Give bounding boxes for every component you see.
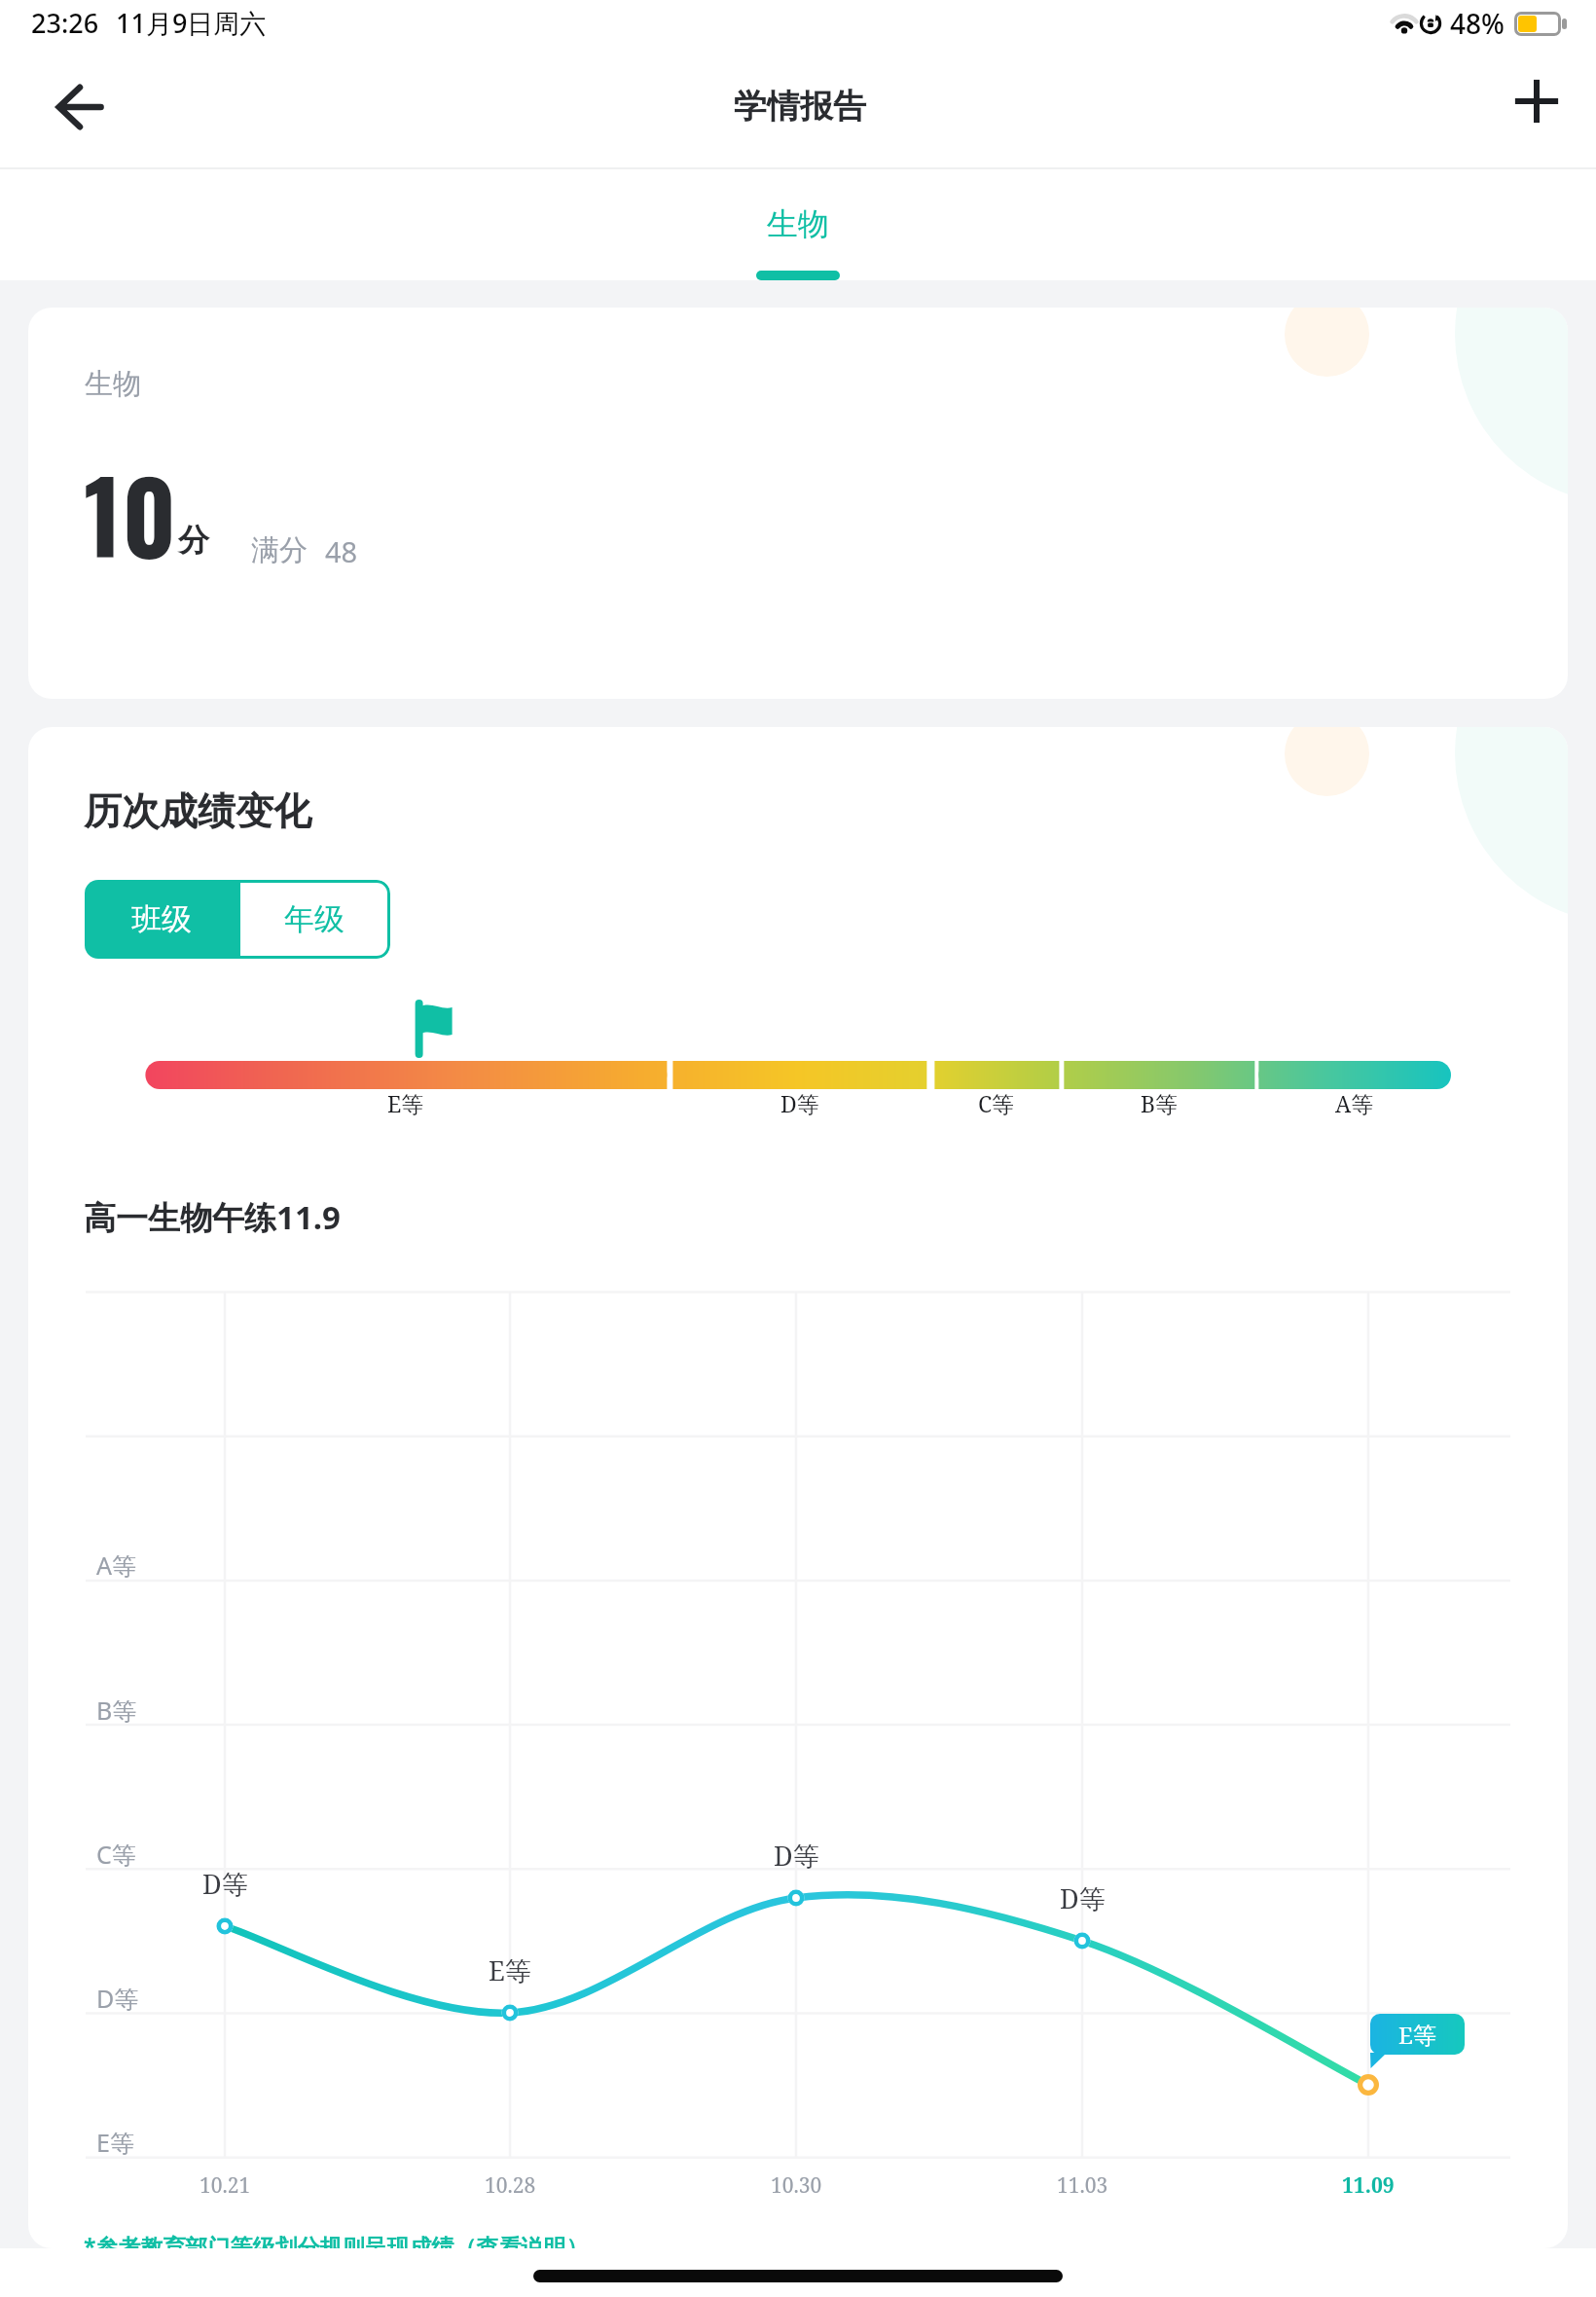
staticText: D等 xyxy=(774,1838,819,1874)
staticText: 48 xyxy=(325,532,358,570)
button[interactable]: 年级 xyxy=(237,880,390,959)
staticText: B等 xyxy=(96,1694,137,1727)
staticText: 学情报告 xyxy=(734,86,866,128)
staticText: 48% xyxy=(1450,5,1505,42)
button[interactable]: 班级 xyxy=(85,880,237,959)
staticText: A等 xyxy=(1335,1088,1374,1118)
staticText: E等 xyxy=(1398,2019,1436,2051)
staticText: 11月9日周六 xyxy=(116,5,267,41)
button[interactable]: 生物 xyxy=(756,169,840,280)
staticText: 11.09 xyxy=(1342,2171,1395,2200)
staticText: C等 xyxy=(96,1838,136,1871)
staticText: 23:26 xyxy=(31,5,99,41)
staticText: C等 xyxy=(978,1088,1015,1118)
staticText: 10 xyxy=(84,439,177,586)
staticText: E等 xyxy=(96,2126,134,2159)
staticText: A等 xyxy=(96,1549,136,1582)
staticText: 高一生物午练11.9 xyxy=(84,1195,341,1239)
staticText: 生物 xyxy=(767,204,829,243)
staticText: 10.21 xyxy=(199,2171,251,2200)
staticText: 生物 xyxy=(85,366,141,402)
staticText: D等 xyxy=(780,1088,819,1118)
staticText: D等 xyxy=(96,1982,139,2015)
staticText: *参考教育部门等级划分规则呈现成绩（查看说明） xyxy=(84,2231,589,2248)
button[interactable]: Back xyxy=(54,81,106,133)
staticText: E等 xyxy=(387,1088,424,1118)
staticText: 10.30 xyxy=(771,2171,822,2200)
staticText: D等 xyxy=(202,1866,248,1902)
staticText: 年级 xyxy=(284,900,345,938)
staticText: B等 xyxy=(1141,1088,1179,1118)
staticText: 班级 xyxy=(131,900,192,938)
button[interactable]: Add xyxy=(1505,69,1569,133)
staticText: 历次成绩变化 xyxy=(84,787,311,835)
staticText: D等 xyxy=(1060,1880,1106,1916)
staticText: E等 xyxy=(489,1952,531,1988)
staticText: 分 xyxy=(178,521,209,560)
staticText: 11.03 xyxy=(1057,2171,1108,2200)
staticText: 10.28 xyxy=(485,2171,536,2200)
staticText: 满分 xyxy=(251,532,308,568)
